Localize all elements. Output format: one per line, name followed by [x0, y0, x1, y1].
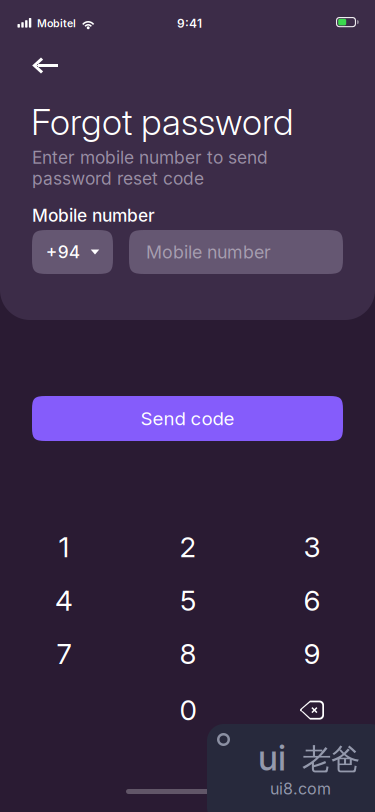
staticText: 8	[179, 637, 196, 671]
staticText: 7	[56, 637, 71, 671]
staticText: Mobile number	[32, 205, 155, 226]
staticText: Forgot password	[31, 100, 294, 144]
staticText: 2	[179, 530, 196, 564]
staticText: Enter mobile number to send password res…	[32, 147, 268, 189]
button[interactable]: 9	[250, 627, 374, 681]
button[interactable]: 5	[126, 574, 250, 627]
button[interactable]: 1	[2, 520, 126, 574]
staticText: 1	[58, 530, 69, 564]
button[interactable]: Mobile number	[129, 230, 343, 274]
button[interactable]: 0	[126, 683, 250, 737]
staticText: 0	[179, 693, 196, 727]
staticText: 9	[303, 637, 320, 671]
button[interactable]: Send code	[32, 396, 343, 441]
button[interactable]: 7	[2, 627, 126, 681]
staticText: 3	[303, 530, 320, 564]
button[interactable]: 4	[2, 574, 126, 627]
staticText: Mobile number	[146, 241, 271, 263]
staticText: 4	[55, 584, 73, 617]
staticText: 5	[180, 584, 196, 617]
button[interactable]: 2	[126, 520, 250, 574]
staticText: ui8.com	[270, 779, 331, 798]
button[interactable]: Delete	[250, 681, 374, 740]
staticText: 9:41	[177, 16, 202, 30]
staticText: Mobitel	[37, 17, 76, 30]
staticText: Send code	[140, 407, 234, 430]
button[interactable]: 8	[126, 627, 250, 681]
button[interactable]: 3	[250, 520, 374, 574]
button[interactable]: 6	[250, 574, 374, 627]
button[interactable]: Back	[0, 43, 72, 88]
button[interactable]: +94	[32, 230, 113, 274]
staticText: 6	[303, 584, 320, 617]
staticText: +94	[46, 241, 80, 262]
staticText: 老爸	[302, 741, 360, 778]
staticText: ui	[258, 737, 286, 779]
